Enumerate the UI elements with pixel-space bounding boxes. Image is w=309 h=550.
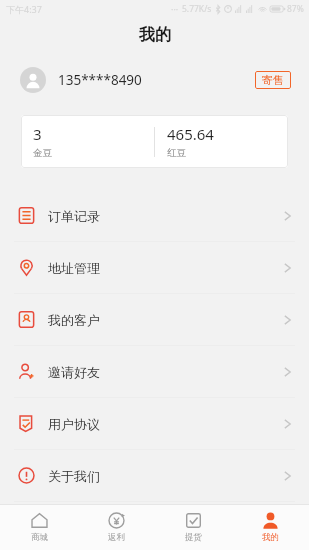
- staticText: 5.77K/s: [182, 3, 212, 15]
- staticText: 红豆: [167, 147, 186, 159]
- button[interactable]: 寄售: [255, 71, 291, 89]
- staticText: 寄售: [262, 73, 284, 87]
- staticText: 提货: [185, 532, 202, 543]
- staticText: 邀请好友: [48, 364, 100, 380]
- button[interactable]: 关于我们: [0, 450, 309, 501]
- staticText: 3: [33, 124, 42, 144]
- staticText: 地址管理: [48, 260, 100, 276]
- button[interactable]: 返利: [78, 507, 155, 548]
- staticText: 135****8490: [58, 71, 142, 89]
- button[interactable]: 3: [21, 115, 154, 168]
- staticText: 商城: [31, 532, 48, 543]
- staticText: 我的客户: [48, 312, 100, 328]
- button[interactable]: 地址管理: [0, 242, 309, 293]
- button[interactable]: 我的: [232, 507, 309, 548]
- staticText: 关于我们: [48, 468, 100, 484]
- button[interactable]: 提货: [155, 507, 232, 548]
- staticText: 我的: [139, 25, 171, 45]
- button[interactable]: 用户协议: [0, 398, 309, 449]
- staticText: ···: [171, 3, 179, 15]
- staticText: 返利: [108, 532, 125, 543]
- button[interactable]: 465.64: [155, 115, 288, 168]
- staticText: 我的: [262, 532, 279, 543]
- staticText: 订单记录: [48, 208, 100, 224]
- staticText: 下午4:37: [6, 3, 42, 15]
- staticText: 用户协议: [48, 416, 100, 432]
- staticText: 金豆: [33, 147, 52, 159]
- button[interactable]: 135****8490: [0, 58, 309, 102]
- staticText: 465.64: [167, 124, 214, 144]
- button[interactable]: 商城: [0, 507, 78, 548]
- staticText: 87%: [287, 3, 304, 15]
- button[interactable]: 我的客户: [0, 294, 309, 345]
- button[interactable]: 邀请好友: [0, 346, 309, 397]
- button[interactable]: 订单记录: [0, 190, 309, 241]
